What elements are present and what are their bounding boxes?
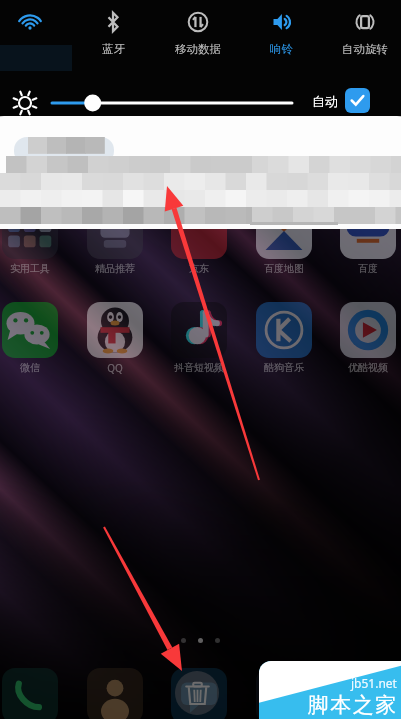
staticText: 脚本之家 xyxy=(307,692,397,718)
staticText: jb51.net xyxy=(351,675,397,691)
button[interactable]: 移动数据 xyxy=(158,0,238,74)
button[interactable]: Dock app xyxy=(2,668,58,719)
button[interactable]: Dock app xyxy=(171,668,227,719)
button[interactable]: Brightness slider xyxy=(50,92,294,114)
staticText: QQ xyxy=(107,361,123,375)
staticText: 蓝牙 xyxy=(102,42,125,56)
staticText: 优酷视频 xyxy=(348,361,388,374)
button[interactable]: Brightness xyxy=(11,89,39,117)
staticText: 百度地图 xyxy=(264,262,304,275)
staticText: 移动数据 xyxy=(175,42,221,56)
button[interactable]: Wi-Fi xyxy=(0,0,70,74)
button[interactable]: 京东 xyxy=(171,203,227,275)
button[interactable]: Dock app xyxy=(256,668,312,719)
button[interactable]: Dock app xyxy=(87,668,143,719)
button[interactable]: 抖音短视频 xyxy=(171,302,227,374)
staticText: 自动 xyxy=(312,93,338,109)
button[interactable]: 微信 xyxy=(2,302,58,374)
staticText: 百度 xyxy=(358,262,378,275)
staticText: 微信 xyxy=(20,361,40,374)
staticText: 响铃 xyxy=(270,42,293,56)
button[interactable]: Remove xyxy=(175,671,219,715)
button[interactable]: 百度地图 xyxy=(256,203,312,275)
button[interactable]: 响铃 xyxy=(241,0,321,74)
staticText: 抖音短视频 xyxy=(174,361,224,374)
staticText: 酷狗音乐 xyxy=(264,361,304,374)
staticText: 实用工具 xyxy=(10,262,50,275)
staticText: 精品推荐 xyxy=(95,262,135,275)
button[interactable]: QQ xyxy=(87,302,143,375)
button[interactable]: 精品推荐 xyxy=(87,203,143,275)
button[interactable]: 百度 xyxy=(340,203,396,275)
button[interactable]: 自动旋转 xyxy=(325,0,401,74)
staticText: 京东 xyxy=(189,262,209,275)
button[interactable]: 蓝牙 xyxy=(73,0,153,74)
button[interactable]: 实用工具 xyxy=(2,203,58,275)
button[interactable]: 酷狗音乐 xyxy=(256,302,312,374)
staticText: 自动旋转 xyxy=(342,42,388,56)
button[interactable]: 优酷视频 xyxy=(340,302,396,374)
button[interactable]: 自动 xyxy=(312,88,370,113)
